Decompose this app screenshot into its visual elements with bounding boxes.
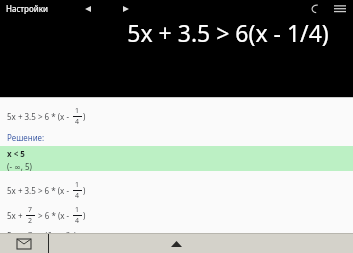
button[interactable]: Настройки xyxy=(0,3,54,14)
button[interactable]: 5x + 3.5 > 6 * (x - xyxy=(7,180,353,201)
button[interactable]: x < 5 xyxy=(0,146,353,171)
staticText: 1 xyxy=(75,205,80,215)
staticText: 5x + 3.5 > 6 * (x - xyxy=(7,185,72,196)
staticText: 5x + 3.5 > 6 * (x - xyxy=(7,111,72,122)
staticText: ) xyxy=(83,185,86,196)
staticText: 4 xyxy=(75,191,80,201)
staticText: 5x + xyxy=(7,230,25,234)
staticText: 4 xyxy=(75,117,80,127)
staticText: x < 5 xyxy=(7,148,25,159)
button[interactable]: Undo xyxy=(306,0,324,17)
button[interactable]: 5x + 3.5 > 6 * (x - xyxy=(7,106,353,127)
staticText: ) xyxy=(83,210,86,221)
staticText: 4 xyxy=(75,216,80,226)
button[interactable]: Mail xyxy=(0,234,48,253)
button[interactable]: Previous xyxy=(80,1,96,17)
staticText: > (6x - xyxy=(36,230,63,234)
staticText: 7 xyxy=(28,205,33,215)
staticText: Решение: xyxy=(7,132,45,143)
staticText: > 6 * (x - xyxy=(36,210,72,221)
button[interactable]: 5x + xyxy=(7,205,353,226)
staticText: (- ∞, 5) xyxy=(7,161,32,171)
staticText: 1 xyxy=(75,180,80,190)
button[interactable]: Scroll up xyxy=(49,234,353,253)
staticText: 1 xyxy=(75,106,80,116)
staticText: ) xyxy=(74,230,77,234)
staticText: Настройки xyxy=(6,3,48,14)
staticText: 3 xyxy=(66,230,71,234)
staticText: ) xyxy=(83,111,86,122)
staticText: 7 xyxy=(28,230,33,234)
staticText: 5x + 3.5 > 6(x - 1/4) xyxy=(127,17,329,48)
button[interactable]: 5x + xyxy=(7,230,353,234)
staticText: 2 xyxy=(28,216,33,226)
staticText: 5x + xyxy=(7,210,25,221)
button[interactable]: Menu xyxy=(330,0,350,17)
button[interactable]: Next xyxy=(118,1,134,17)
